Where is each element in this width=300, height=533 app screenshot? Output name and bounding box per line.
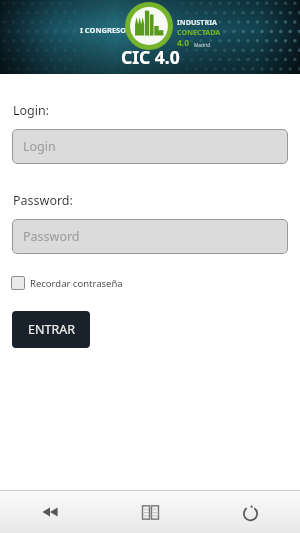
button[interactable]: Password	[12, 219, 288, 254]
button[interactable]: ENTRAR	[12, 311, 90, 348]
staticText: 4.0	[177, 37, 190, 49]
staticText: Recordar contraseña	[30, 277, 123, 290]
button[interactable]: Bookmarks	[100, 491, 200, 533]
staticText: Login	[23, 138, 56, 155]
button[interactable]: Reload	[200, 491, 300, 533]
staticText: I CONGRESO	[80, 25, 127, 35]
staticText: CONECTADA	[177, 27, 221, 37]
staticText: CIC 4.0	[121, 45, 180, 69]
staticText: Password:	[13, 192, 73, 209]
staticText: Password	[23, 228, 80, 245]
button[interactable]: Back	[0, 491, 100, 533]
staticText: Madrid	[194, 42, 211, 49]
button[interactable]: Login	[12, 129, 288, 164]
staticText: Login:	[13, 102, 50, 119]
staticText: INDUSTRIA	[177, 17, 217, 27]
button[interactable]: Recordar contraseña	[11, 276, 123, 290]
staticText: ENTRAR	[28, 321, 75, 338]
